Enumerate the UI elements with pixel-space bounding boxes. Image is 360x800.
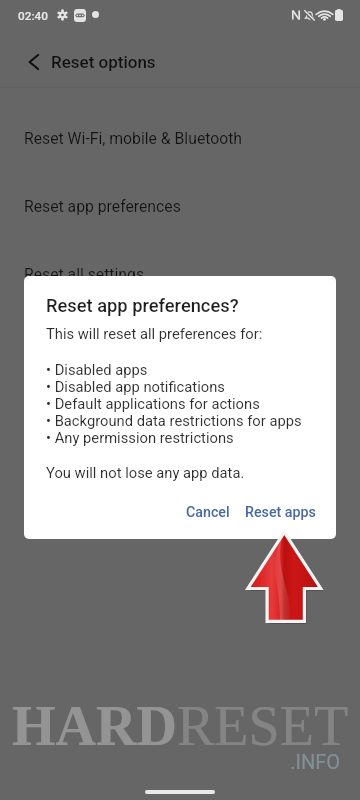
staticText: • Disabled apps	[46, 361, 148, 378]
staticText: This will reset all preferences for:	[46, 325, 263, 342]
button[interactable]: Reset all settings	[0, 252, 360, 296]
staticText: • Default applications for actions	[46, 395, 260, 412]
button[interactable]: Reset Wi-Fi, mobile & Bluetooth	[0, 116, 360, 160]
staticText: Reset all settings	[24, 265, 145, 283]
button[interactable]: Reset apps	[240, 497, 321, 528]
staticText: You will not lose any app data.	[46, 464, 245, 481]
staticText: Reset app preferences	[24, 197, 181, 215]
staticText: • Background data restrictions for apps	[46, 412, 302, 429]
staticText: 02:40	[18, 9, 48, 23]
staticText: Reset app preferences?	[46, 295, 239, 316]
button[interactable]: Reset app preferences	[0, 184, 360, 228]
staticText: Reset options	[51, 52, 156, 72]
staticText: .INFO	[0, 750, 340, 773]
staticText: • Any permission restrictions	[46, 429, 234, 446]
staticText: Reset apps	[245, 504, 316, 521]
staticText: RESET	[177, 695, 349, 757]
button[interactable]: Back	[19, 48, 47, 76]
staticText: Reset Wi-Fi, mobile & Bluetooth	[24, 129, 243, 147]
staticText: • Disabled app notifications	[46, 378, 225, 395]
button[interactable]: Cancel	[181, 497, 235, 528]
staticText: Cancel	[186, 504, 230, 521]
staticText: HARD	[12, 695, 177, 757]
